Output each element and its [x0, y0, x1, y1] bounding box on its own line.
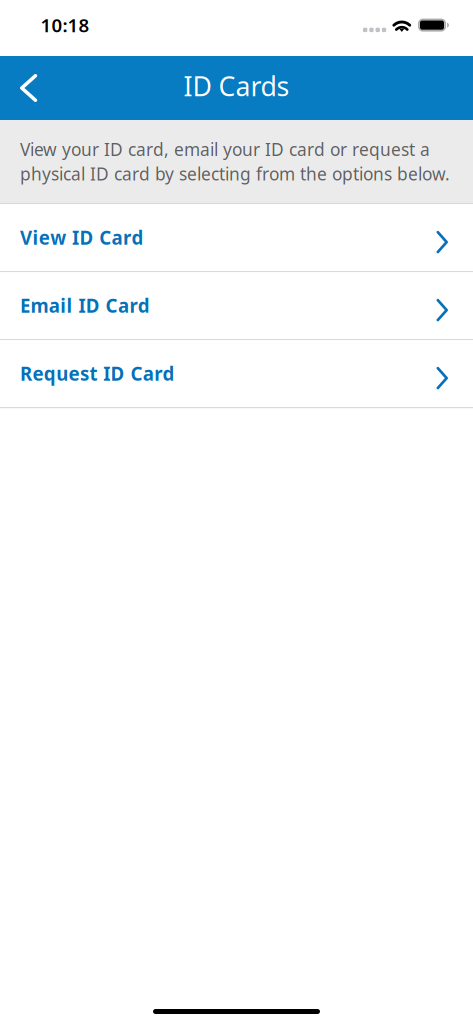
staticText: Request ID Card: [20, 361, 175, 386]
button[interactable]: Back: [0, 56, 55, 120]
button[interactable]: View ID Card: [0, 204, 473, 272]
staticText: View your ID card, email your ID card or…: [20, 138, 450, 185]
staticText: ID Cards: [183, 68, 289, 104]
button[interactable]: Request ID Card: [0, 340, 473, 408]
button[interactable]: Email ID Card: [0, 272, 473, 340]
staticText: 10:18: [40, 13, 89, 37]
staticText: Email ID Card: [20, 293, 150, 318]
staticText: View ID Card: [20, 225, 143, 250]
